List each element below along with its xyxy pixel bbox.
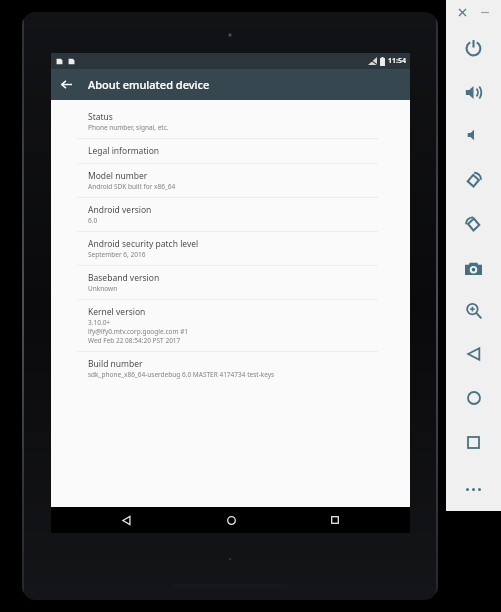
staticText: Wed Feb 22 08:54:20 PST 2017 [88, 336, 181, 345]
staticText: Unknown [88, 284, 118, 293]
button[interactable]: Volume up [446, 75, 501, 109]
button[interactable]: Model number [51, 164, 410, 197]
button[interactable]: Navigate up [51, 69, 82, 100]
button[interactable]: Minimize [477, 4, 493, 20]
button[interactable]: Rotate left [446, 163, 501, 197]
staticText: Android SDK built for x86_64 [88, 182, 176, 191]
button[interactable]: Zoom [446, 294, 501, 328]
staticText: September 6, 2016 [88, 250, 146, 259]
staticText: Baseband version [88, 272, 160, 284]
staticText: sdk_phone_x86_64-userdebug 6.0 MASTER 41… [88, 370, 275, 379]
button[interactable]: Rotate right [446, 207, 501, 241]
staticText: Legal information [88, 145, 160, 157]
staticText: 6.0 [88, 216, 98, 225]
staticText: Status [88, 111, 113, 123]
button[interactable]: Home [201, 507, 261, 533]
staticText: Phone number, signal, etc. [88, 123, 169, 132]
button[interactable]: Android version [51, 198, 410, 231]
button[interactable]: Legal information [51, 139, 410, 163]
button[interactable]: Status [51, 105, 410, 138]
staticText: Build number [88, 358, 143, 370]
button[interactable]: Power [446, 31, 501, 65]
button[interactable]: Volume down [446, 118, 501, 152]
staticText: Model number [88, 170, 148, 182]
button[interactable]: Kernel version [51, 300, 410, 351]
button[interactable]: More [446, 472, 501, 506]
button[interactable]: Back [96, 507, 156, 533]
staticText: Android security patch level [88, 238, 199, 250]
staticText: Android version [88, 204, 152, 216]
button[interactable]: Android security patch level [51, 232, 410, 265]
button[interactable]: Home [446, 381, 501, 415]
button[interactable]: Baseband version [51, 266, 410, 299]
button[interactable]: Build number [51, 352, 410, 385]
staticText: Kernel version [88, 306, 146, 318]
staticText: lfy@lfy0.mtv.corp.google.com #1 [88, 327, 189, 336]
staticText: About emulated device [88, 77, 210, 92]
staticText: 11:54 [388, 56, 406, 66]
staticText: 3.10.0+ [88, 318, 111, 327]
button[interactable]: Recent apps [305, 507, 365, 533]
button[interactable]: Close [454, 4, 470, 20]
button[interactable]: Take screenshot [446, 251, 501, 285]
button[interactable]: Overview [446, 425, 501, 459]
button[interactable]: Back [446, 337, 501, 371]
